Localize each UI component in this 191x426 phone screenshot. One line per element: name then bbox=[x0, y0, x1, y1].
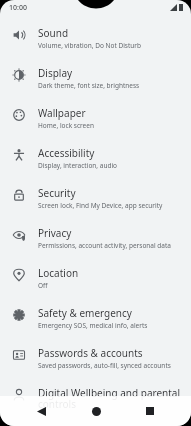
button[interactable]: Recents bbox=[139, 400, 161, 422]
staticText: Home, lock screen bbox=[38, 121, 94, 130]
staticText: Dark theme, font size, brightness bbox=[38, 81, 140, 90]
staticText: Privacy bbox=[38, 226, 72, 240]
staticText: Security bbox=[38, 186, 76, 200]
staticText: Screen lock, Find My Device, app securit… bbox=[38, 201, 163, 210]
button[interactable]: Security bbox=[0, 178, 191, 218]
button[interactable]: Location bbox=[0, 258, 191, 298]
button[interactable]: Back bbox=[30, 400, 52, 422]
staticText: Sound bbox=[38, 26, 69, 40]
staticText: Off bbox=[38, 281, 48, 290]
button[interactable]: Digital Wellbeing and parental controls bbox=[0, 378, 191, 419]
staticText: Digital Wellbeing and parental controls bbox=[38, 386, 181, 411]
button[interactable]: Privacy bbox=[0, 218, 191, 258]
button[interactable]: Accessibility bbox=[0, 138, 191, 178]
staticText: Safety & emergency bbox=[38, 306, 132, 320]
staticText: 10:00 bbox=[9, 3, 27, 13]
button[interactable]: Sound bbox=[0, 18, 191, 58]
staticText: Passwords & accounts bbox=[38, 346, 143, 360]
staticText: Emergency SOS, medical info, alerts bbox=[38, 321, 148, 330]
button[interactable]: Home bbox=[85, 400, 107, 422]
button[interactable]: Display bbox=[0, 58, 191, 98]
staticText: Wallpaper bbox=[38, 106, 86, 120]
staticText: Permissions, account activity, personal … bbox=[38, 241, 171, 250]
staticText: Volume, vibration, Do Not Disturb bbox=[38, 41, 142, 50]
staticText: Display bbox=[38, 66, 73, 80]
staticText: Accessibility bbox=[38, 146, 95, 160]
button[interactable]: Wallpaper bbox=[0, 98, 191, 138]
staticText: Location bbox=[38, 266, 79, 280]
staticText: Display, interaction, audio bbox=[38, 161, 118, 170]
button[interactable]: Passwords & accounts bbox=[0, 338, 191, 378]
staticText: Saved passwords, auto-fill, synced accou… bbox=[38, 361, 171, 370]
button[interactable]: Safety & emergency bbox=[0, 298, 191, 338]
